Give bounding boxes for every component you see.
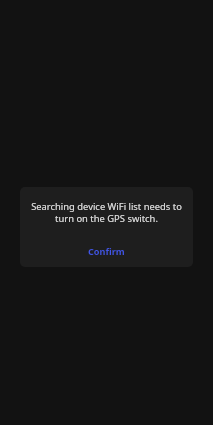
button[interactable]: Confirm (20, 234, 193, 267)
staticText: Confirm (88, 245, 125, 257)
staticText: Searching device WiFi list needs to turn… (28, 200, 185, 225)
